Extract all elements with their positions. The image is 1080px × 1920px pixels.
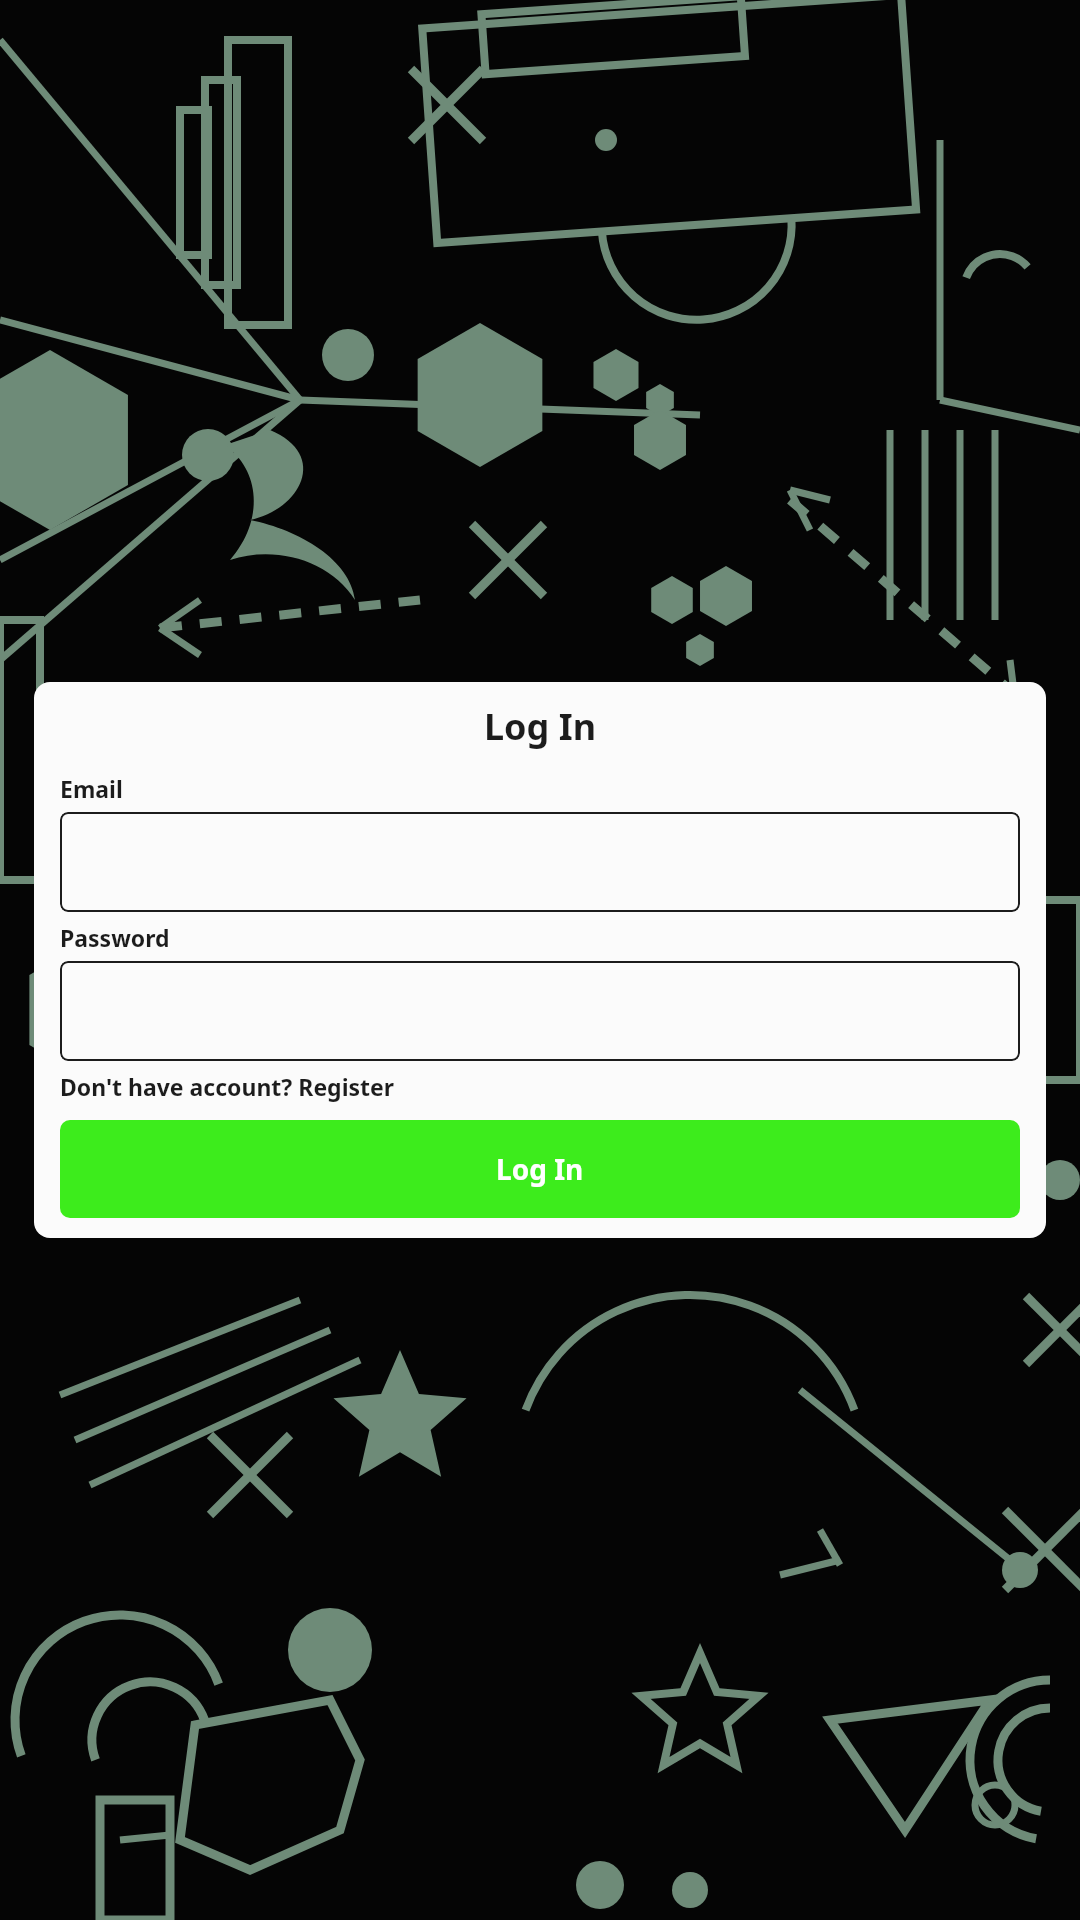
staticText: Log In xyxy=(60,702,1020,751)
button[interactable] xyxy=(60,961,1020,1061)
staticText: Password xyxy=(60,922,170,953)
button[interactable] xyxy=(60,812,1020,912)
staticText: Don't have account? Register xyxy=(60,1071,395,1102)
staticText: Email xyxy=(60,773,123,804)
button[interactable]: Don't have account? Register xyxy=(60,1071,395,1102)
staticText: Log In xyxy=(496,1150,584,1188)
button[interactable]: Log In xyxy=(60,1120,1020,1218)
